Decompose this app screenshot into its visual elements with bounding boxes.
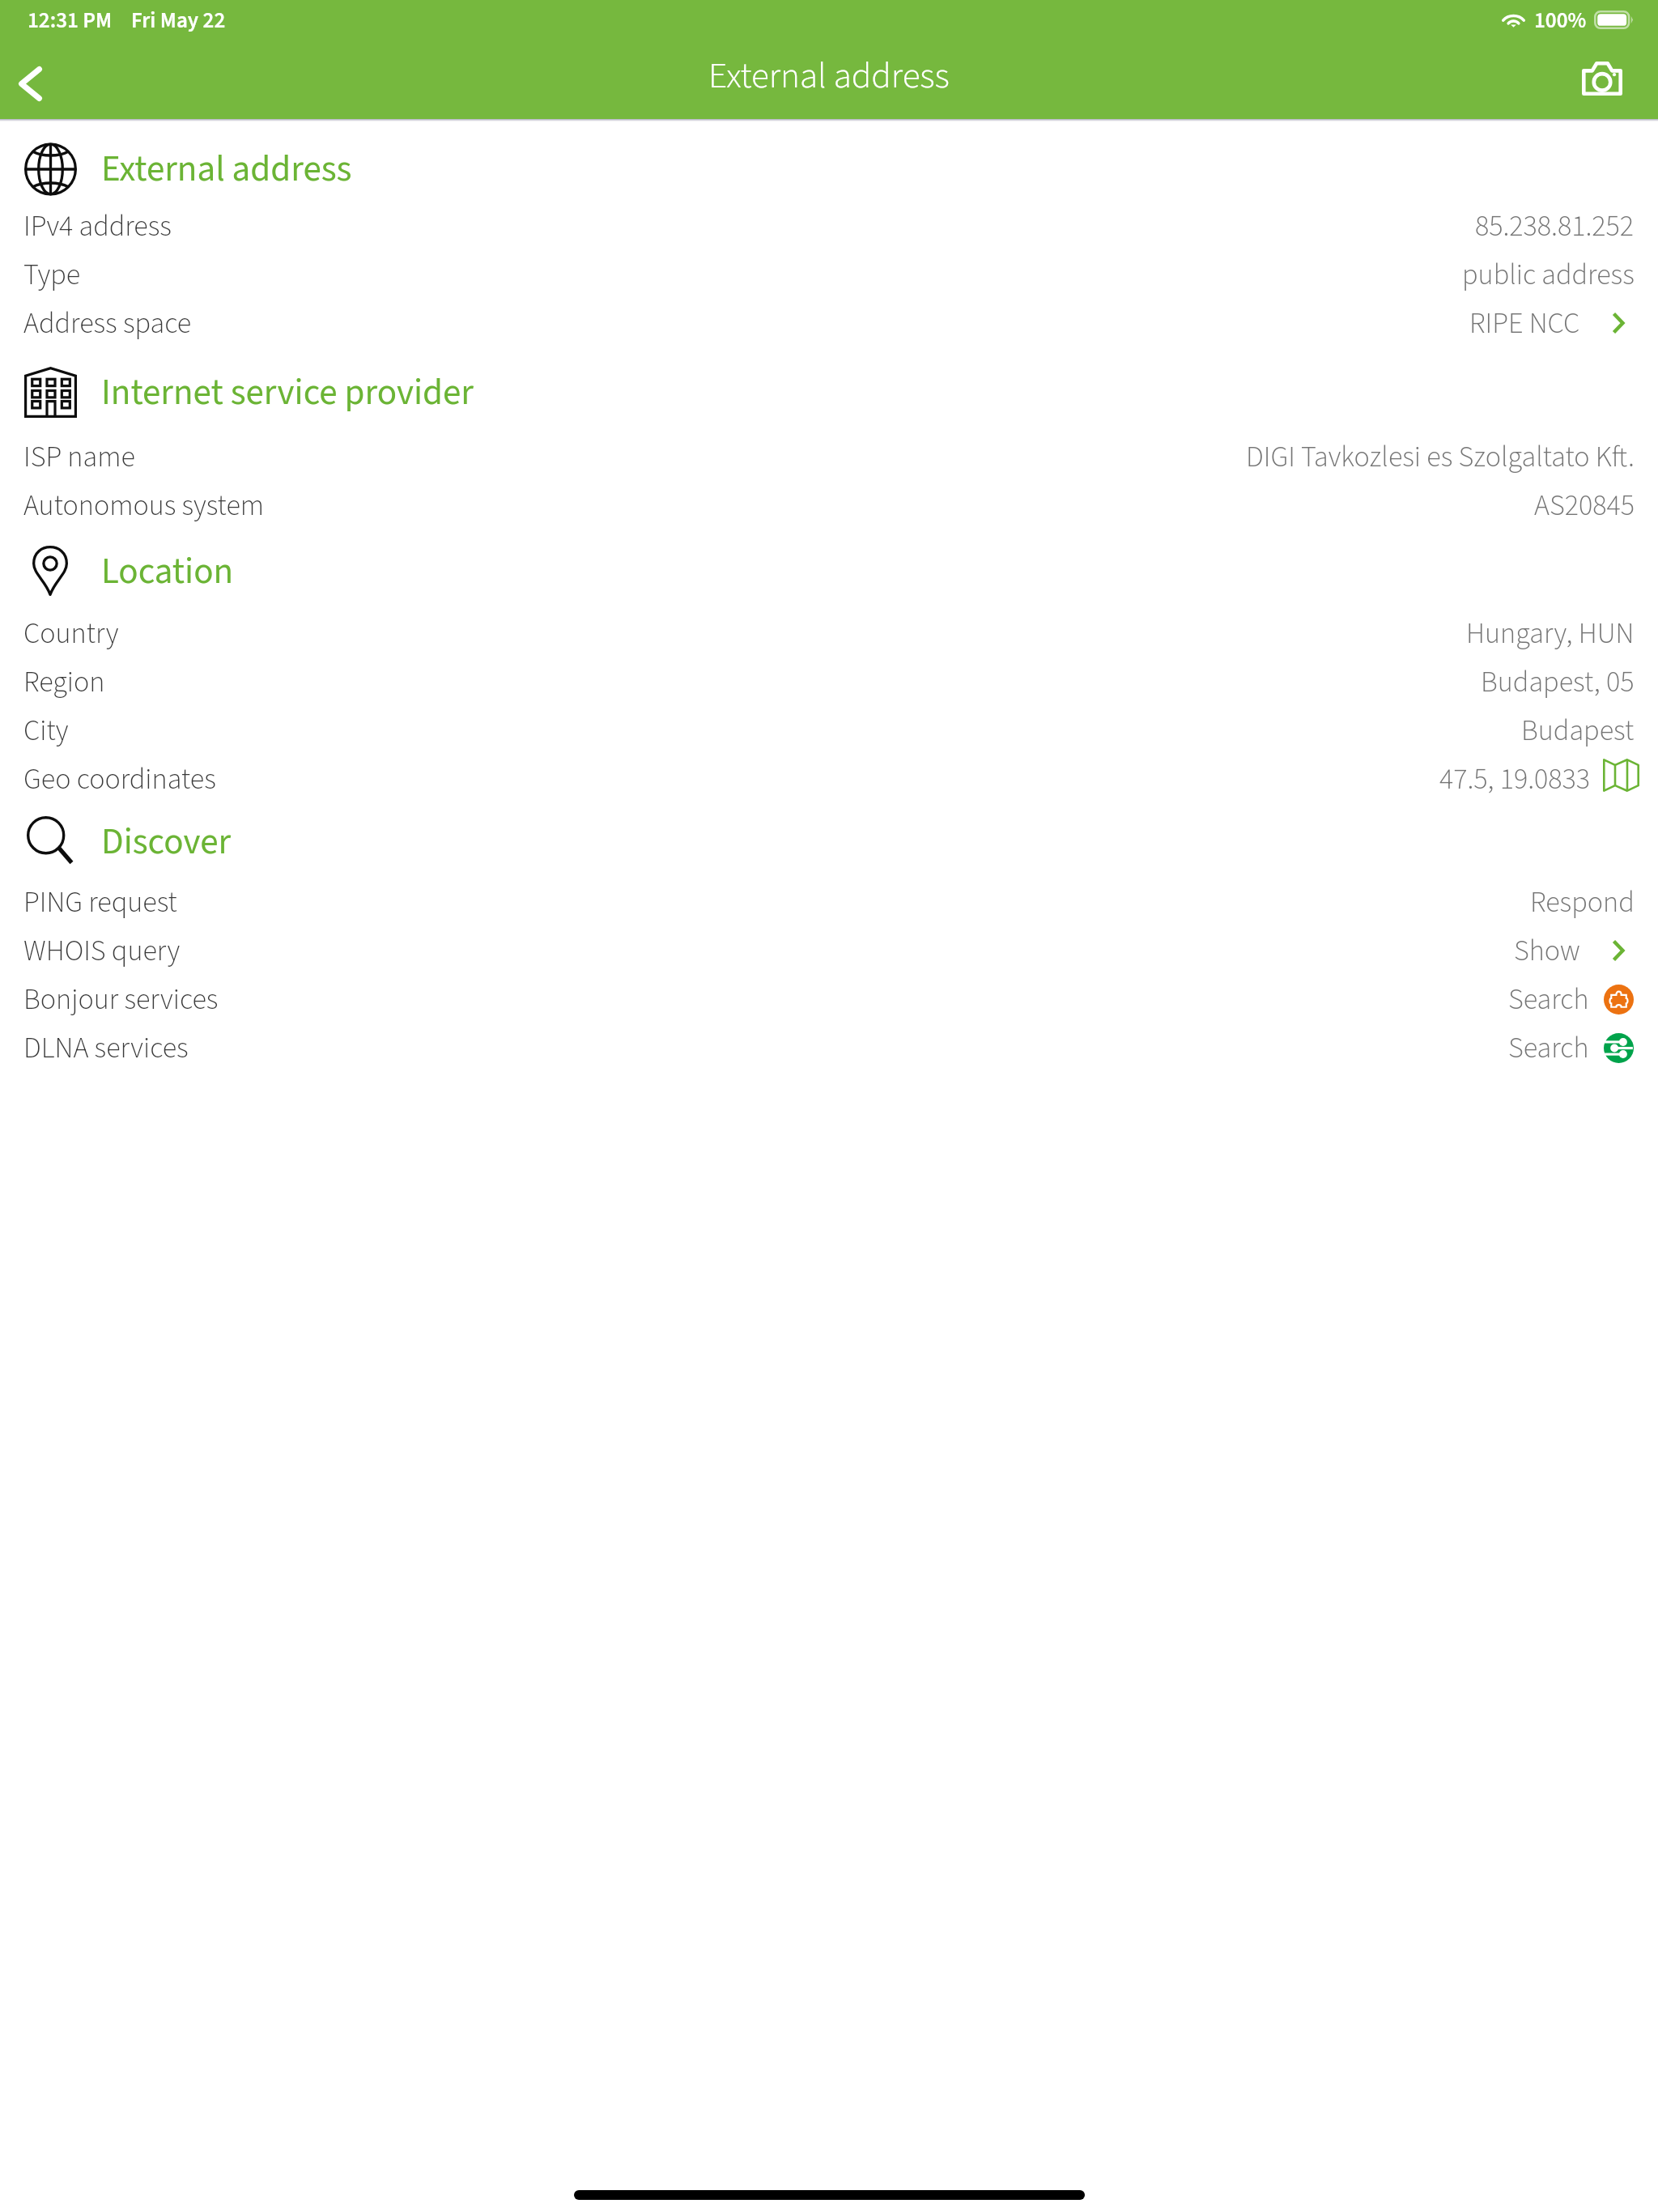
button[interactable]: City <box>0 706 1658 755</box>
staticText: Bonjour services <box>23 979 219 1020</box>
staticText: 47.5, 19.0833 <box>1439 759 1591 800</box>
button[interactable]: Geo coordinates <box>0 755 1658 803</box>
staticText: Hungary, HUN <box>1466 613 1635 654</box>
button[interactable]: Location <box>0 546 1658 596</box>
button[interactable]: PING request <box>0 878 1658 926</box>
staticText: Respond <box>1530 882 1635 923</box>
button[interactable]: External address <box>0 143 1658 196</box>
button[interactable]: Region <box>0 657 1658 706</box>
button[interactable]: Bonjour services <box>1598 975 1639 1023</box>
staticText: Location <box>101 546 234 596</box>
staticText: External address <box>101 143 352 195</box>
staticText: City <box>23 710 69 751</box>
button[interactable]: ISP name <box>0 432 1658 481</box>
staticText: Budapest, 05 <box>1481 661 1635 703</box>
staticText: Fri May 22 <box>131 5 226 36</box>
staticText: public address <box>1462 254 1635 296</box>
button[interactable]: Address space <box>0 299 1658 347</box>
staticText: Discover <box>101 816 232 865</box>
staticText: ISP name <box>23 436 135 478</box>
button[interactable]: Discover <box>0 816 1658 865</box>
button[interactable]: Bonjour services <box>0 975 1658 1023</box>
button[interactable]: Type <box>0 250 1658 299</box>
staticText: DIGI Tavkozlesi es Szolgaltato Kft. <box>1246 436 1635 478</box>
button[interactable]: DLNA services <box>1598 1023 1639 1072</box>
staticText: Address space <box>23 303 192 344</box>
staticText: Country <box>23 613 119 654</box>
staticText: IPv4 address <box>23 206 172 247</box>
staticText: Autonomous system <box>23 485 265 526</box>
staticText: AS20845 <box>1534 485 1635 526</box>
staticText: External address <box>708 50 950 102</box>
staticText: Geo coordinates <box>23 759 216 800</box>
staticText: Show <box>1514 930 1580 972</box>
button[interactable]: Autonomous system <box>0 481 1658 530</box>
button[interactable]: Country <box>0 609 1658 657</box>
button[interactable]: WHOIS query <box>0 926 1658 975</box>
staticText: PING request <box>23 882 177 923</box>
staticText: WHOIS query <box>23 930 181 972</box>
staticText: Budapest <box>1521 710 1635 751</box>
button[interactable]: Camera <box>1546 50 1658 117</box>
staticText: Search <box>1508 1027 1589 1069</box>
staticText: Region <box>23 661 105 703</box>
button[interactable]: Open map <box>1597 755 1645 803</box>
staticText: RIPE NCC <box>1469 303 1580 344</box>
staticText: Type <box>23 254 81 296</box>
staticText: Search <box>1508 979 1589 1020</box>
button[interactable]: IPv4 address <box>0 202 1658 250</box>
staticText: 85.238.81.252 <box>1475 206 1635 247</box>
button[interactable]: DLNA services <box>0 1023 1658 1072</box>
staticText: DLNA services <box>23 1027 189 1069</box>
button[interactable]: Back <box>0 48 61 119</box>
staticText: 100% <box>1534 5 1587 36</box>
button[interactable]: Internet service provider <box>0 367 1658 418</box>
staticText: 12:31 PM <box>28 5 113 36</box>
staticText: Internet service provider <box>101 367 474 418</box>
